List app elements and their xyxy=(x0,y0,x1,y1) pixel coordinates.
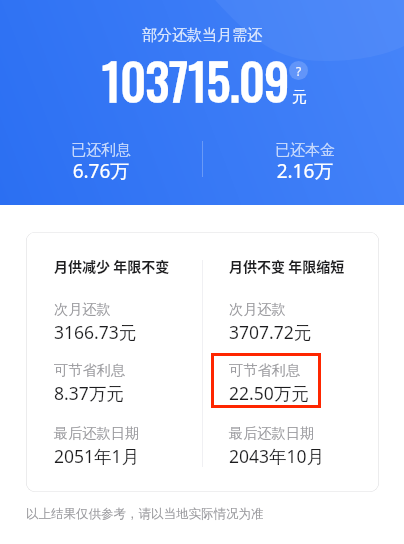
staticText: 103715.09 xyxy=(102,44,290,117)
staticText: 已还本金 xyxy=(245,141,365,160)
staticText: 8.37万元 xyxy=(54,381,124,405)
staticText: 2.16万 xyxy=(245,158,365,184)
staticText: 2043年10月 xyxy=(229,444,325,468)
staticText: 可节省利息 xyxy=(229,361,300,379)
staticText: 月供不变 年限缩短 xyxy=(229,256,345,276)
staticText: 最后还款日期 xyxy=(229,424,315,442)
staticText: 元 xyxy=(292,88,307,107)
staticText: 部分还款当月需还 xyxy=(0,26,404,45)
staticText: 次月还款 xyxy=(229,300,286,318)
staticText: ? xyxy=(296,63,302,79)
staticText: 最后还款日期 xyxy=(54,424,140,442)
staticText: 6.76万 xyxy=(41,158,161,184)
staticText: 次月还款 xyxy=(54,300,111,318)
staticText: 2051年1月 xyxy=(54,444,140,468)
staticText: 月供减少 年限不变 xyxy=(54,256,170,276)
staticText: 以上结果仅供参考，请以当地实际情况为准 xyxy=(26,506,264,522)
button[interactable]: 说明 xyxy=(289,61,308,80)
staticText: 22.50万元 xyxy=(229,381,309,405)
staticText: 3707.72元 xyxy=(229,320,312,344)
button[interactable]: 已还本金 xyxy=(245,138,365,186)
staticText: 可节省利息 xyxy=(54,361,125,379)
staticText: 3166.73元 xyxy=(54,320,137,344)
staticText: 已还利息 xyxy=(41,141,161,160)
button[interactable]: 已还利息 xyxy=(41,138,161,186)
